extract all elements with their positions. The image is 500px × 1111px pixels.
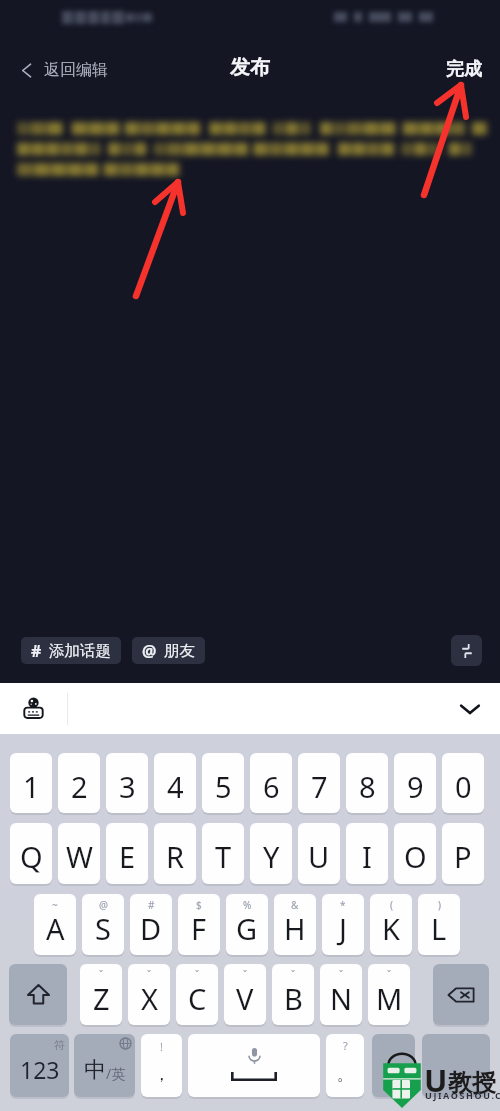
staticText: ˇ: [243, 968, 248, 982]
staticText: 发布: [230, 55, 270, 80]
staticText: 5: [215, 767, 232, 806]
button[interactable]: ~: [34, 894, 76, 955]
staticText: UJIAOSHOU.COM: [425, 1089, 500, 1101]
button[interactable]: Enter: [422, 1034, 490, 1097]
button[interactable]: %: [226, 894, 268, 955]
button[interactable]: Y: [250, 823, 292, 884]
staticText: H: [284, 909, 306, 948]
button[interactable]: Switch language: [0, 683, 67, 734]
button[interactable]: 中: [74, 1034, 135, 1097]
button[interactable]: 符: [10, 1034, 69, 1097]
button[interactable]: ˇ: [128, 964, 170, 1025]
staticText: 6: [263, 767, 280, 806]
button[interactable]: I: [346, 823, 388, 884]
button[interactable]: ˇ: [320, 964, 362, 1025]
button[interactable]: R: [154, 823, 196, 884]
button[interactable]: ˇ: [80, 964, 122, 1025]
button[interactable]: 1: [10, 753, 52, 813]
button[interactable]: &: [274, 894, 316, 955]
button[interactable]: ?: [326, 1034, 364, 1097]
button[interactable]: 6: [250, 753, 292, 813]
button[interactable]: 4: [154, 753, 196, 813]
button[interactable]: @: [82, 894, 124, 955]
staticText: Y: [263, 837, 280, 876]
staticText: 中: [84, 1056, 106, 1084]
button[interactable]: *: [322, 894, 364, 955]
staticText: *: [340, 898, 346, 912]
staticText: D: [140, 909, 162, 948]
button[interactable]: ): [418, 894, 460, 955]
button[interactable]: #: [130, 894, 172, 955]
staticText: &: [291, 898, 299, 912]
button[interactable]: 7: [298, 753, 340, 813]
staticText: 教授: [448, 1068, 496, 1098]
button[interactable]: $: [178, 894, 220, 955]
staticText: I: [362, 837, 372, 876]
staticText: @: [99, 898, 108, 912]
button[interactable]: O: [394, 823, 436, 884]
staticText: U: [308, 837, 330, 876]
button[interactable]: (: [370, 894, 412, 955]
button[interactable]: #: [21, 637, 121, 664]
button[interactable]: ˇ: [368, 964, 410, 1025]
button[interactable]: P: [442, 823, 484, 884]
staticText: F: [191, 909, 207, 948]
button[interactable]: Collapse editor: [451, 635, 482, 666]
staticText: 3: [119, 767, 136, 806]
staticText: 9: [407, 767, 424, 806]
staticText: P: [454, 837, 472, 876]
button[interactable]: 3: [106, 753, 148, 813]
button[interactable]: 9: [394, 753, 436, 813]
staticText: M: [376, 979, 403, 1018]
button[interactable]: ˇ: [176, 964, 218, 1025]
staticText: ˇ: [387, 968, 392, 982]
button[interactable]: Space: [188, 1034, 320, 1097]
staticText: K: [382, 909, 400, 948]
button[interactable]: ˇ: [224, 964, 266, 1025]
staticText: $: [196, 898, 202, 912]
staticText: N: [330, 979, 353, 1018]
staticText: W: [66, 837, 93, 876]
button[interactable]: 完成: [438, 50, 490, 89]
staticText: 返回编辑: [44, 60, 108, 80]
button[interactable]: U: [298, 823, 340, 884]
staticText: C: [188, 979, 207, 1018]
staticText: 符: [54, 1038, 65, 1052]
staticText: 8: [359, 767, 376, 806]
staticText: V: [236, 979, 254, 1018]
button[interactable]: Hide keyboard: [440, 683, 500, 734]
button[interactable]: 返回编辑: [10, 52, 116, 88]
staticText: %: [243, 898, 252, 912]
staticText: G: [236, 909, 258, 948]
staticText: ˇ: [291, 968, 296, 982]
staticText: #: [148, 898, 155, 912]
button[interactable]: W: [58, 823, 100, 884]
staticText: 123: [20, 1054, 60, 1085]
button[interactable]: Q: [10, 823, 52, 884]
staticText: 0: [455, 767, 472, 806]
button[interactable]: 5: [202, 753, 244, 813]
staticText: ˇ: [147, 968, 152, 982]
staticText: T: [215, 837, 232, 876]
staticText: !: [160, 1039, 163, 1054]
button[interactable]: T: [202, 823, 244, 884]
staticText: 朋友: [164, 641, 195, 661]
staticText: ˇ: [99, 968, 104, 982]
staticText: E: [119, 837, 136, 876]
button[interactable]: Shift: [9, 964, 67, 1025]
staticText: #: [31, 640, 42, 662]
staticText: Z: [93, 979, 110, 1018]
staticText: ˇ: [195, 968, 200, 982]
button[interactable]: @: [132, 637, 205, 664]
button[interactable]: !: [141, 1034, 182, 1097]
button[interactable]: ˇ: [272, 964, 314, 1025]
button[interactable]: 2: [58, 753, 100, 813]
button[interactable]: 0: [442, 753, 484, 813]
button[interactable]: 8: [346, 753, 388, 813]
staticText: 1: [23, 767, 40, 806]
staticText: 。: [337, 1064, 354, 1085]
button[interactable]: Emoji: [372, 1034, 415, 1097]
button[interactable]: Backspace: [433, 964, 489, 1025]
staticText: @: [142, 640, 157, 662]
button[interactable]: E: [106, 823, 148, 884]
